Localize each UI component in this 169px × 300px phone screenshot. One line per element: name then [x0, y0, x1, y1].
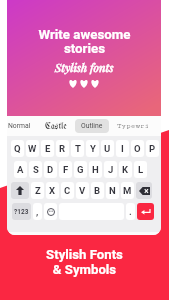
staticText: .: [129, 206, 132, 217]
button[interactable]: .: [126, 203, 135, 220]
button[interactable]: ,: [33, 203, 42, 220]
button[interactable]: I: [116, 140, 129, 157]
staticText: Q: [14, 143, 21, 154]
staticText: W: [28, 143, 37, 154]
staticText: Stylish fonts: [55, 60, 114, 75]
button[interactable]: Castle: [39, 119, 73, 134]
button[interactable]: Normal: [7, 119, 37, 133]
staticText: A: [17, 164, 24, 175]
staticText: I: [121, 143, 124, 154]
staticText: L: [138, 164, 144, 175]
staticText: E: [45, 143, 51, 154]
button[interactable]: S: [29, 161, 42, 178]
staticText: Y: [90, 143, 96, 154]
button[interactable]: Typewriter: [111, 119, 154, 133]
button[interactable]: P: [146, 140, 159, 157]
staticText: G: [77, 164, 84, 175]
button[interactable]: Backspace: [136, 182, 152, 199]
button[interactable]: M: [121, 182, 134, 199]
staticText: X: [49, 185, 56, 196]
button[interactable]: L: [134, 161, 147, 178]
staticText: D: [47, 164, 54, 175]
button[interactable]: R: [56, 140, 69, 157]
button[interactable]: T: [71, 140, 84, 157]
button[interactable]: B: [91, 182, 104, 199]
button[interactable]: E: [41, 140, 54, 157]
staticText: K: [122, 164, 129, 175]
button[interactable]: Enter: [137, 203, 154, 220]
staticText: Normal: [8, 122, 31, 130]
button[interactable]: U: [101, 140, 114, 157]
button[interactable]: Outline: [75, 119, 109, 133]
button[interactable]: ?123: [12, 203, 31, 220]
button[interactable]: D: [44, 161, 57, 178]
staticText: R: [59, 143, 66, 154]
staticText: T: [75, 143, 81, 154]
staticText: V: [79, 185, 86, 196]
staticText: H: [92, 164, 99, 175]
button[interactable]: C: [61, 182, 74, 199]
staticText: Write awesome stories: [38, 27, 131, 56]
button[interactable]: X: [46, 182, 59, 199]
button[interactable]: N: [106, 182, 119, 199]
staticText: F: [63, 164, 69, 175]
staticText: ,: [36, 206, 39, 217]
button[interactable]: Z: [31, 182, 44, 199]
button[interactable]: J: [104, 161, 117, 178]
staticText: Outline: [81, 122, 103, 130]
staticText: ?123: [14, 208, 29, 216]
button[interactable]: Q: [11, 140, 24, 157]
staticText: N: [109, 185, 116, 196]
button[interactable]: F: [59, 161, 72, 178]
staticText: Z: [35, 185, 41, 196]
staticText: B: [94, 185, 101, 196]
staticText: M: [123, 185, 132, 196]
button[interactable]: Shift: [11, 182, 29, 199]
staticText: C: [64, 185, 71, 196]
staticText: U: [104, 143, 111, 154]
button[interactable]: A: [14, 161, 27, 178]
button[interactable]: O: [131, 140, 144, 157]
button[interactable]: H: [89, 161, 102, 178]
staticText: J: [108, 164, 114, 175]
staticText: S: [33, 164, 39, 175]
staticText: Stylish Fonts & Symbols: [46, 247, 123, 277]
button[interactable]: W: [26, 140, 39, 157]
button[interactable]: Emoji: [44, 203, 57, 220]
button[interactable]: K: [119, 161, 132, 178]
button[interactable]: Y: [86, 140, 99, 157]
staticText: Typewriter: [117, 122, 148, 130]
staticText: Castle: [45, 122, 67, 131]
staticText: P: [149, 143, 156, 154]
button[interactable]: V: [76, 182, 89, 199]
staticText: O: [134, 143, 141, 154]
button[interactable]: G: [74, 161, 87, 178]
